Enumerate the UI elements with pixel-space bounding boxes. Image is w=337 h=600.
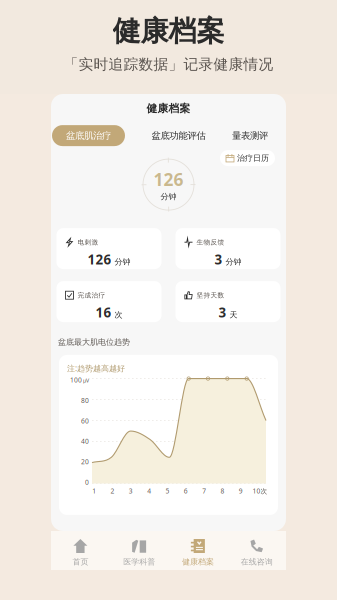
staticText: 10次 <box>252 487 267 495</box>
staticText: 健康档案 <box>182 557 214 567</box>
staticText: 盆底最大肌电位趋势 <box>58 337 130 347</box>
staticText: 首页 <box>72 557 88 567</box>
staticText: 0 <box>85 478 89 487</box>
button[interactable]: 医学科普 <box>110 539 169 567</box>
staticText: 治疗日历 <box>237 153 269 163</box>
staticText: µV <box>83 377 89 384</box>
staticText: 电刺激 <box>77 238 98 246</box>
staticText: 20 <box>81 457 89 466</box>
staticText: 分钟 <box>160 192 176 201</box>
staticText: 分钟 <box>114 257 130 267</box>
staticText: 5 <box>165 487 169 495</box>
button[interactable]: 盆底功能评估 <box>151 130 205 141</box>
staticText: 天 <box>229 310 237 320</box>
staticText: 6 <box>184 487 188 495</box>
button[interactable]: 生物反馈 <box>175 228 280 269</box>
staticText: 次 <box>114 310 122 320</box>
button[interactable]: 量表测评 <box>232 130 268 141</box>
staticText: 分钟 <box>225 257 241 267</box>
staticText: 坚持天数 <box>196 291 224 299</box>
staticText: 完成治疗 <box>77 291 105 299</box>
staticText: 在线咨询 <box>241 557 273 567</box>
staticText: 3 <box>129 487 133 495</box>
button[interactable]: 健康档案 <box>168 539 227 567</box>
staticText: 盆底功能评估 <box>151 130 205 141</box>
staticText: 健康档案 <box>112 14 224 48</box>
staticText: 医学科普 <box>123 557 155 567</box>
staticText: 7 <box>202 487 206 495</box>
staticText: 40 <box>81 437 89 446</box>
staticText: 1 <box>92 487 96 495</box>
staticText: 量表测评 <box>232 130 268 141</box>
button[interactable]: 坚持天数 <box>175 281 280 322</box>
staticText: 3 <box>214 250 222 268</box>
staticText: 60 <box>81 416 89 425</box>
staticText: 「实时追踪数据」记录健康情况 <box>63 55 273 73</box>
staticText: 2 <box>110 487 114 495</box>
staticText: 3 <box>218 303 226 321</box>
staticText: 盆底肌治疗 <box>66 130 111 141</box>
staticText: 16 <box>95 303 111 321</box>
button[interactable]: 电刺激 <box>56 228 161 269</box>
button[interactable]: 完成治疗 <box>56 281 161 322</box>
staticText: 健康档案 <box>146 102 190 115</box>
button[interactable]: 盆底肌治疗 <box>52 125 125 146</box>
staticText: 126 <box>87 250 111 268</box>
staticText: 9 <box>239 487 243 495</box>
staticText: 126 <box>153 168 183 191</box>
button[interactable]: 治疗日历 <box>220 150 275 166</box>
staticText: 4 <box>147 487 151 495</box>
staticText: 8 <box>220 487 224 495</box>
button[interactable]: 在线咨询 <box>227 539 286 567</box>
button[interactable]: 首页 <box>51 539 110 567</box>
staticText: 80 <box>81 396 89 405</box>
staticText: 100 <box>70 376 82 384</box>
staticText: 注:趋势越高越好 <box>67 363 125 373</box>
staticText: 生物反馈 <box>196 238 224 246</box>
